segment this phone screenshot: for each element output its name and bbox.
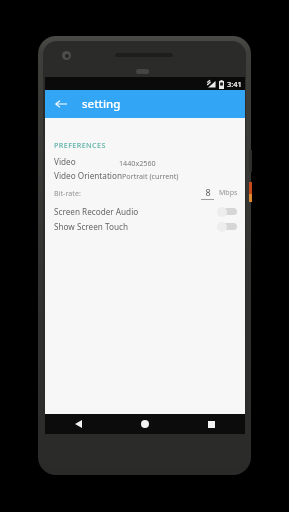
button[interactable]: Back [45,414,111,434]
button[interactable]: Recent apps [178,414,245,434]
staticText: Portrait (current) [122,171,179,181]
staticText: PREFERENCES [54,140,106,150]
button[interactable]: Video Resolusion [45,156,245,169]
button[interactable]: Video Orientation [45,169,245,182]
staticText: Bit-rate: [54,188,81,198]
button[interactable]: Back [50,93,72,115]
staticText: Video Orientation [54,170,122,181]
staticText: 8 [205,186,211,198]
staticText: 1440x2560 [119,158,156,168]
button[interactable]: Bit-rate: [45,185,245,200]
staticText: Screen Recoder Audio [54,206,139,217]
staticText: 3:41 [227,79,242,89]
staticText: Show Screen Touch [54,221,128,232]
staticText: Video Resolusion [54,156,119,169]
button[interactable]: Home [111,414,178,434]
button[interactable]: Screen Recoder Audio [45,204,245,219]
button[interactable]: Show Screen Touch [45,219,245,234]
staticText: setting [82,96,121,112]
staticText: Mbps [219,188,238,198]
